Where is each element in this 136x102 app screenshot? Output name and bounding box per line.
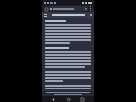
button[interactable]: Back [51,97,56,102]
button[interactable] [49,6,88,11]
button[interactable]: Tabs [44,7,48,11]
other: Menu [44,14,47,17]
button[interactable]: Menu [42,12,94,18]
button[interactable]: More options [89,5,92,12]
button[interactable]: Home [66,97,71,102]
button[interactable]: Recent apps [80,97,85,102]
